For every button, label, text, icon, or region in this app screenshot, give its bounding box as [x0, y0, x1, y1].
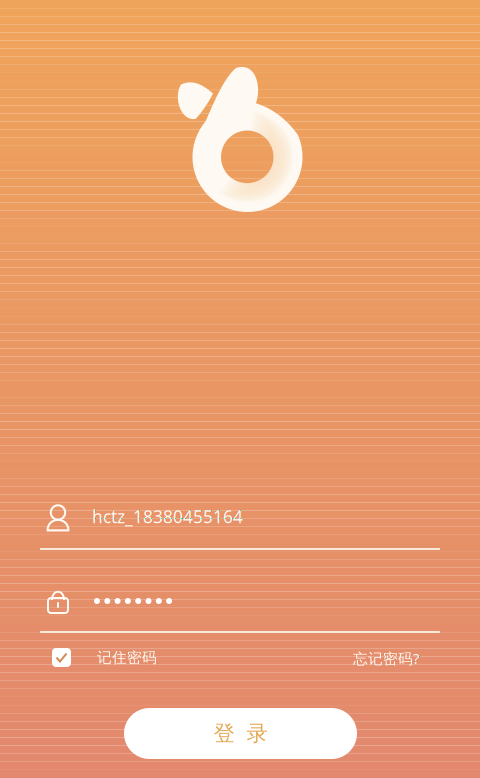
- staticText: hctz_18380455164: [92, 505, 243, 528]
- staticText: 登 录: [213, 720, 267, 747]
- staticText: 忘记密码?: [353, 648, 419, 668]
- button[interactable]: 登 录: [124, 708, 357, 759]
- staticText: 记住密码: [97, 648, 157, 666]
